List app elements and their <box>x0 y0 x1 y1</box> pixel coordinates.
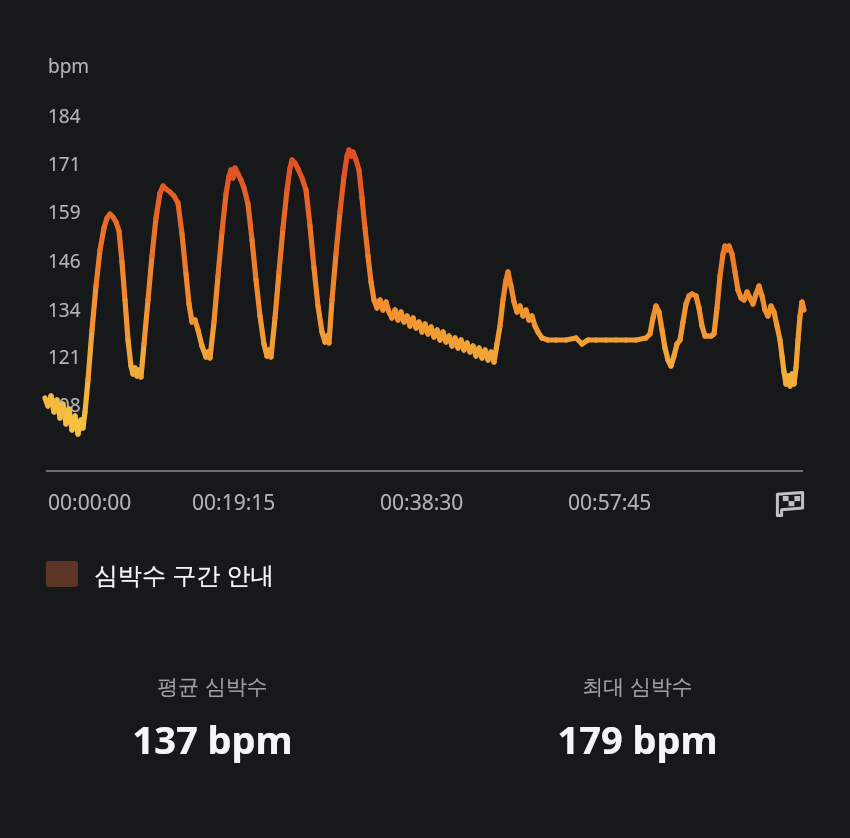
button[interactable]: 최대 심박수 <box>425 668 850 769</box>
staticText: 146 <box>48 248 81 274</box>
staticText: 179 bpm <box>557 713 718 765</box>
staticText: 00:19:15 <box>192 488 276 517</box>
button[interactable]: 심박수 구간 안내 <box>46 552 275 596</box>
staticText: 00:38:30 <box>380 488 464 517</box>
staticText: 00:00:00 <box>48 488 132 517</box>
staticText: 121 <box>48 344 81 370</box>
staticText: 심박수 구간 안내 <box>94 558 275 591</box>
staticText: 134 <box>48 297 81 323</box>
staticText: 00:57:45 <box>568 488 652 517</box>
staticText: 137 bpm <box>132 713 293 765</box>
button[interactable]: Finish <box>773 485 807 519</box>
staticText: 108 <box>48 392 81 418</box>
staticText: 159 <box>48 199 81 225</box>
staticText: 평균 심박수 <box>157 672 268 701</box>
staticText: 184 <box>48 103 81 129</box>
button[interactable]: 평균 심박수 <box>0 668 425 769</box>
staticText: bpm <box>48 53 90 79</box>
staticText: 171 <box>48 151 81 177</box>
staticText: 최대 심박수 <box>582 672 693 701</box>
